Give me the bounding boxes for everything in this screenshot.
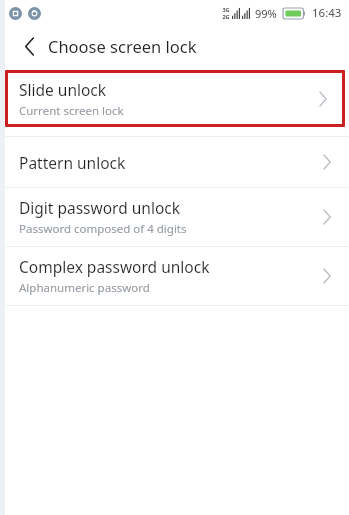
staticText: 2G [222, 13, 230, 20]
staticText: 16:43 [312, 5, 342, 21]
button[interactable]: Complex password unlock [5, 247, 349, 305]
staticText: 99% [255, 6, 277, 21]
button[interactable]: Digit password unlock [5, 188, 349, 246]
staticText: Current screen lock [19, 103, 124, 119]
staticText: Pattern unlock [19, 152, 126, 173]
staticText: 3G [222, 6, 230, 13]
staticText: Digit password unlock [19, 197, 181, 218]
staticText: Slide unlock [19, 79, 107, 100]
staticText: Choose screen lock [48, 35, 197, 57]
button[interactable]: Slide unlock [5, 70, 345, 127]
staticText: Password composed of 4 digits [19, 221, 187, 237]
staticText: Complex password unlock [19, 256, 210, 277]
button[interactable]: Back [13, 30, 45, 62]
staticText: Alphanumeric password [19, 280, 150, 296]
button[interactable]: Pattern unlock [5, 137, 349, 187]
